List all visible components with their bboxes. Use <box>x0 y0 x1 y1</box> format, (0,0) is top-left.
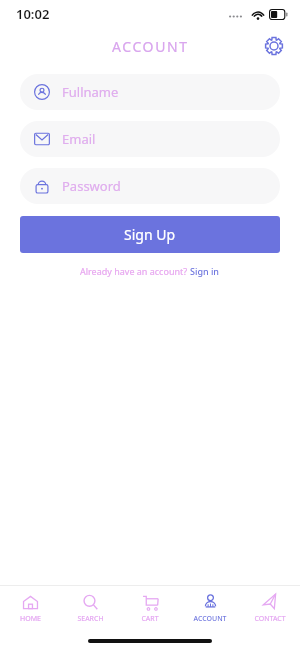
button[interactable]: Settings <box>259 31 289 61</box>
button[interactable]: Fullname <box>20 74 280 110</box>
staticText: SEARCH <box>77 614 104 624</box>
staticText: Email <box>62 130 96 148</box>
staticText: Sign Up <box>124 225 176 244</box>
staticText: Sign in <box>190 265 220 277</box>
button[interactable]: ACCOUNT <box>180 590 240 628</box>
staticText: HOME <box>20 614 41 624</box>
staticText: ACCOUNT <box>193 614 227 624</box>
button[interactable]: CONTACT <box>240 590 300 628</box>
staticText: ACCOUNT <box>112 37 189 56</box>
button[interactable]: CART <box>120 590 180 628</box>
button[interactable]: HOME <box>0 590 60 628</box>
button[interactable]: SEARCH <box>60 590 120 628</box>
staticText: CONTACT <box>254 614 286 624</box>
staticText: Already have an account? <box>80 265 190 277</box>
staticText: 10:02 <box>16 5 50 23</box>
staticText: Password <box>62 177 121 195</box>
button[interactable]: Password <box>20 168 280 204</box>
button[interactable]: Sign in <box>190 265 220 277</box>
button[interactable]: Sign Up <box>20 216 280 253</box>
button[interactable]: Email <box>20 121 280 157</box>
staticText: Fullname <box>62 83 119 101</box>
staticText: CART <box>141 614 159 624</box>
